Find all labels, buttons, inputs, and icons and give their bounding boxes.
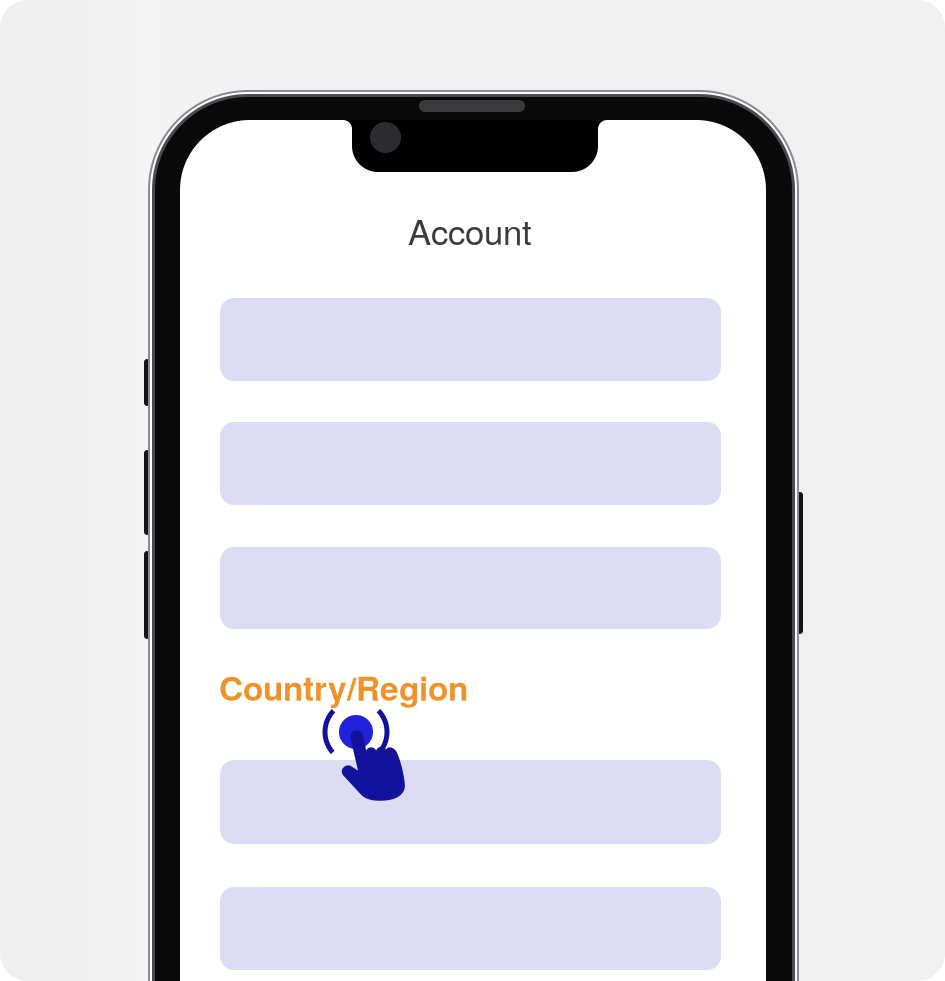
staticText: Country/Region <box>219 663 468 711</box>
staticText: Account <box>408 205 532 255</box>
button[interactable]: Settings row <box>220 760 721 844</box>
